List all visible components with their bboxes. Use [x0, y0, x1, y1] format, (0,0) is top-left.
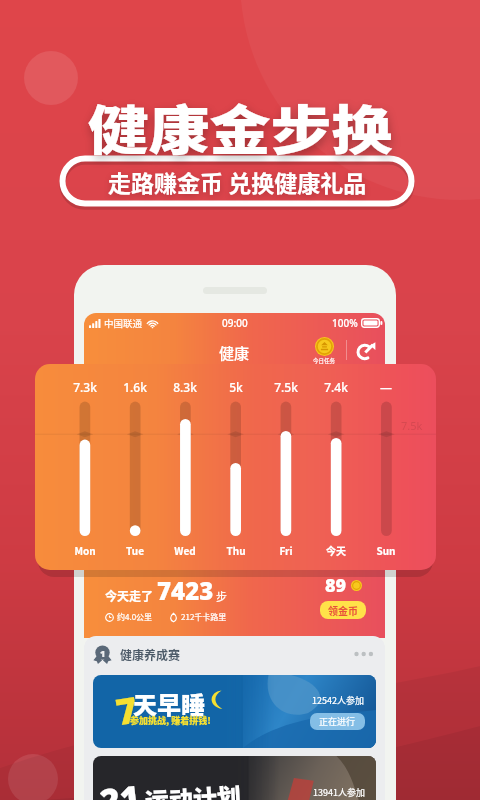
staticText: —: [362, 379, 410, 395]
staticText: 7423: [157, 574, 214, 607]
staticText: 1.6k: [111, 379, 159, 395]
staticText: 健康金步换: [0, 89, 480, 166]
staticText: 13941人参加: [313, 786, 365, 799]
staticText: 212千卡路里: [181, 611, 227, 623]
staticText: 中国联通: [104, 316, 143, 330]
staticText: 7: [112, 685, 142, 736]
staticText: 100%: [332, 316, 358, 330]
staticText: Mon: [61, 543, 109, 557]
staticText: 今日任务: [313, 357, 336, 365]
staticText: 7.3k: [61, 379, 109, 395]
button[interactable]: 今日任务: [311, 337, 338, 365]
button[interactable]: Share: [355, 340, 377, 362]
staticText: 7.5k: [401, 418, 423, 433]
button[interactable]: 1: [93, 636, 373, 672]
staticText: 1: [100, 647, 106, 659]
staticText: 健康: [219, 342, 250, 364]
button[interactable]: 7.3k: [35, 364, 436, 570]
staticText: Wed: [161, 543, 209, 557]
staticText: 健康养成赛: [120, 646, 181, 663]
staticText: 参加挑战, 赚着拼钱!: [130, 714, 211, 727]
staticText: 8.3k: [161, 379, 209, 395]
staticText: 12542人参加: [312, 694, 364, 707]
staticText: 天早睡: [133, 686, 205, 721]
staticText: Thu: [212, 543, 260, 557]
staticText: Sun: [362, 543, 410, 557]
staticText: 5k: [212, 379, 260, 395]
staticText: 21: [97, 774, 143, 800]
staticText: Tue: [111, 543, 159, 557]
button[interactable]: 7: [93, 675, 376, 748]
staticText: 走路赚金币 兑换健康礼品: [108, 165, 367, 198]
staticText: Fri: [262, 543, 310, 557]
staticText: 正在进行: [319, 715, 356, 728]
staticText: 89: [325, 573, 347, 598]
button[interactable]: 领金币: [320, 601, 366, 619]
staticText: 今天走了: [105, 587, 154, 604]
staticText: 步: [216, 588, 227, 604]
staticText: 约4.0公里: [117, 611, 153, 623]
staticText: 09:00: [222, 316, 248, 330]
button[interactable]: 21: [93, 756, 376, 800]
staticText: 7.4k: [312, 379, 360, 395]
staticText: 领金币: [328, 603, 358, 617]
staticText: 今天: [312, 543, 360, 557]
staticText: 7.5k: [262, 379, 310, 395]
staticText: 运动计划: [144, 777, 242, 800]
